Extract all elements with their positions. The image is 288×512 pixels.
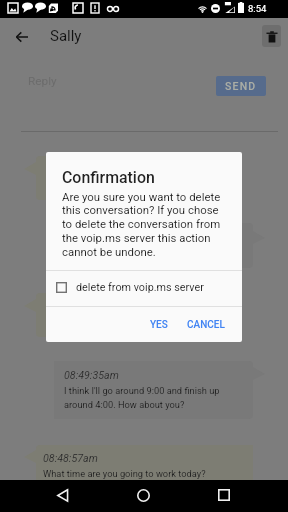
button[interactable]: Back: [47, 480, 77, 510]
staticText: delete from voip.ms server: [76, 281, 204, 294]
staticText: around 4:00. How about you?: [64, 399, 185, 410]
staticText: 8:54: [248, 3, 267, 14]
button[interactable]: YES: [141, 312, 177, 338]
staticText: What time are you going to work today?: [43, 468, 206, 479]
staticText: Confirmation: [62, 168, 155, 187]
button[interactable]: delete from voip.ms server: [46, 270, 242, 305]
button[interactable]: Home: [128, 480, 158, 510]
staticText: 08:48:57am: [43, 452, 98, 465]
staticText: Are you sure you want to delete this con…: [62, 190, 228, 259]
button[interactable]: Recent apps: [209, 480, 239, 510]
staticText: YES: [150, 319, 168, 331]
staticText: I think I'll go around 9:00 and finish u…: [64, 385, 220, 396]
staticText: CANCEL: [187, 319, 225, 331]
button[interactable]: Delete conversation: [262, 25, 281, 47]
button[interactable]: SEND: [216, 76, 266, 96]
staticText: Sally: [50, 27, 82, 45]
button[interactable]: CANCEL: [178, 312, 234, 338]
button[interactable]: Navigate up: [7, 22, 37, 52]
staticText: Reply: [28, 74, 57, 88]
staticText: SEND: [225, 80, 257, 92]
staticText: 08:49:35am: [64, 369, 119, 382]
